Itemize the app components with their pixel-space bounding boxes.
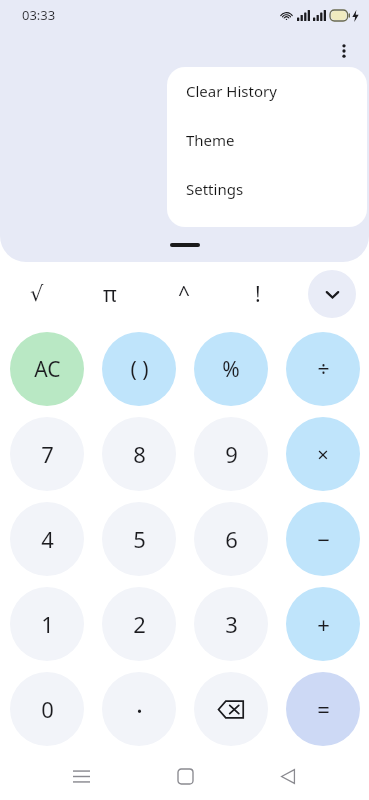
button[interactable]: AC [10, 332, 84, 406]
button[interactable]: 4 [10, 502, 84, 576]
button[interactable]: Theme [167, 115, 367, 164]
staticText: − [317, 524, 330, 554]
staticText: · [136, 692, 143, 727]
button[interactable]: 8 [102, 417, 176, 491]
button[interactable]: × [286, 417, 360, 491]
staticText: ÷ [317, 355, 330, 384]
staticText: ! [255, 280, 261, 309]
button[interactable]: 1 [10, 587, 84, 661]
staticText: Clear History [186, 81, 277, 101]
staticText: % [222, 355, 240, 384]
staticText: ( ) [130, 355, 149, 384]
button[interactable]: Clear History [167, 67, 367, 115]
button[interactable]: Back [265, 753, 311, 799]
button[interactable]: 0 [10, 672, 84, 746]
button[interactable]: % [194, 332, 268, 406]
staticText: 3 [225, 609, 238, 639]
button[interactable]: 2 [102, 587, 176, 661]
button[interactable]: − [286, 502, 360, 576]
staticText: 4 [41, 524, 54, 554]
staticText: Theme [186, 130, 235, 150]
staticText: + [317, 609, 330, 639]
button[interactable]: ! [221, 268, 295, 320]
staticText: 6 [225, 524, 238, 554]
button[interactable]: + [286, 587, 360, 661]
button[interactable]: Recents [58, 753, 104, 799]
button[interactable]: More options [327, 34, 361, 68]
button[interactable]: √ [0, 268, 73, 320]
staticText: 03:33 [22, 6, 56, 24]
staticText: 2 [133, 609, 146, 639]
staticText: π [103, 280, 117, 309]
staticText: 8 [133, 439, 146, 469]
button[interactable]: · [102, 672, 176, 746]
button[interactable]: 3 [194, 587, 268, 661]
button[interactable]: π [73, 268, 147, 320]
button[interactable]: 9 [194, 417, 268, 491]
button[interactable]: 6 [194, 502, 268, 576]
button[interactable]: 5 [102, 502, 176, 576]
button[interactable]: Backspace [194, 672, 268, 746]
staticText: 0 [41, 694, 54, 724]
staticText: = [317, 694, 330, 724]
staticText: √ [30, 282, 44, 306]
staticText: × [317, 441, 329, 468]
button[interactable]: Home [162, 753, 208, 799]
staticText: 7 [41, 439, 54, 469]
button[interactable]: ( ) [102, 332, 176, 406]
button[interactable]: ÷ [286, 332, 360, 406]
staticText: 9 [225, 439, 238, 469]
button[interactable]: 7 [10, 417, 84, 491]
button[interactable]: ^ [147, 268, 221, 320]
staticText: AC [34, 355, 61, 384]
staticText: Settings [186, 179, 244, 199]
button[interactable]: Settings [167, 164, 367, 213]
staticText: ^ [178, 280, 191, 309]
staticText: 1 [41, 609, 54, 639]
staticText: 5 [133, 524, 146, 554]
button[interactable]: Expand [308, 270, 356, 318]
button[interactable]: = [286, 672, 360, 746]
